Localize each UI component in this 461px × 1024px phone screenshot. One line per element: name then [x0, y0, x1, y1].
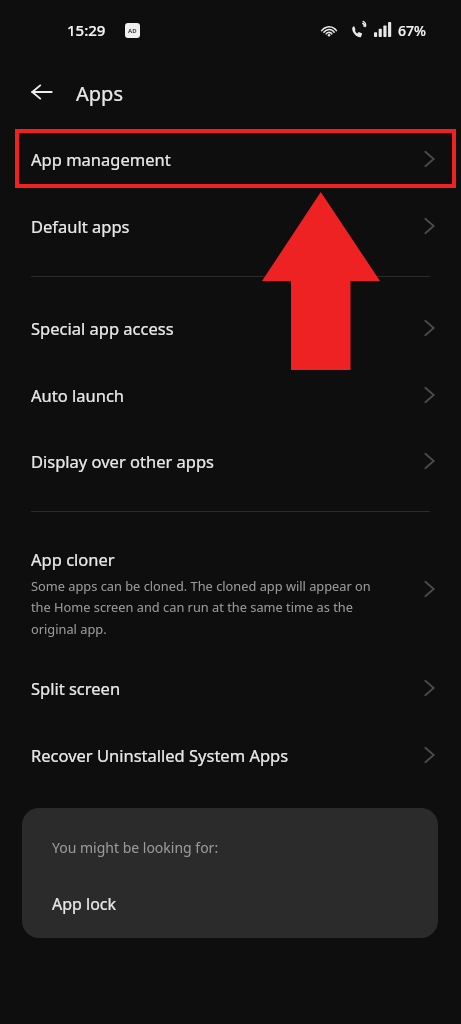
button[interactable]: App management [0, 129, 461, 189]
button[interactable]: Default apps [0, 196, 461, 256]
staticText: AD [128, 27, 137, 35]
staticText: App cloner [31, 548, 115, 570]
staticText: Apps [76, 80, 123, 107]
button[interactable]: App cloner [0, 536, 461, 652]
staticText: You might be looking for: [52, 838, 219, 857]
staticText: 15:29 [67, 20, 106, 40]
button[interactable]: Back [22, 72, 62, 112]
staticText: Default apps [31, 215, 130, 237]
button[interactable]: Split screen [0, 658, 461, 718]
staticText: App lock [52, 893, 117, 915]
button[interactable]: Recover Uninstalled System Apps [0, 725, 461, 785]
staticText: Auto launch [31, 384, 124, 406]
button[interactable]: App lock [22, 878, 438, 930]
staticText: 67% [398, 21, 426, 40]
button[interactable]: Special app access [0, 298, 461, 358]
staticText: Recover Uninstalled System Apps [31, 744, 289, 766]
button[interactable]: Display over other apps [0, 431, 461, 491]
staticText: Split screen [31, 677, 121, 699]
staticText: App management [31, 148, 171, 170]
staticText: Some apps can be cloned. The cloned app … [31, 577, 381, 638]
button[interactable]: Auto launch [0, 365, 461, 425]
staticText: Display over other apps [31, 450, 215, 472]
staticText: Special app access [31, 317, 174, 339]
